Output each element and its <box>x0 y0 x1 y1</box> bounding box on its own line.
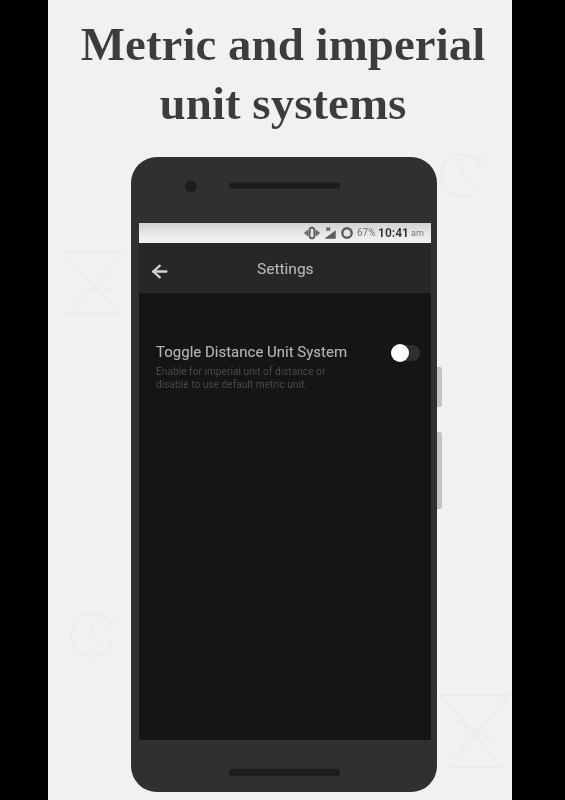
staticText: am <box>411 228 424 239</box>
button[interactable]: Toggle Distance Unit System <box>139 343 431 390</box>
staticText: Settings <box>257 260 314 278</box>
staticText: Enable for imperial unit of distance or … <box>156 366 326 390</box>
staticText: Metric and imperial unit systems <box>51 18 515 129</box>
staticText: 67% <box>357 227 376 239</box>
staticText: Toggle Distance Unit System <box>156 343 348 361</box>
staticText: 10:41 <box>378 226 409 240</box>
button[interactable]: Toggle distance unit system <box>391 343 420 362</box>
button[interactable]: Back <box>139 248 179 288</box>
